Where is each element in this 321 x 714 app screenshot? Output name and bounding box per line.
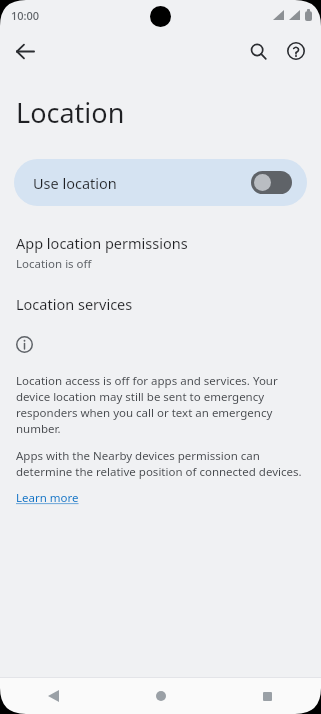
button[interactable]: Home	[107, 678, 214, 714]
button[interactable]: Back	[0, 678, 107, 714]
button[interactable]: Location services	[0, 294, 321, 314]
staticText: 10:00	[11, 8, 40, 23]
staticText: Location is off	[16, 256, 92, 272]
button[interactable]: Learn more	[16, 490, 79, 506]
staticText: Apps with the Nearby devices permission …	[16, 448, 307, 480]
staticText: App location permissions	[16, 233, 188, 253]
button[interactable]: Back	[6, 32, 44, 70]
button[interactable]: Use location	[14, 159, 307, 206]
button[interactable]: App location permissions	[0, 233, 321, 272]
staticText: Location	[16, 94, 125, 131]
button[interactable]: Recent apps	[214, 678, 321, 714]
button[interactable]: Help	[277, 32, 315, 70]
staticText: Use location	[33, 173, 251, 193]
button[interactable]: Search	[239, 32, 277, 70]
staticText: Learn more	[16, 490, 79, 506]
staticText: Location access is off for apps and serv…	[16, 373, 307, 437]
staticText: Location services	[16, 294, 133, 314]
